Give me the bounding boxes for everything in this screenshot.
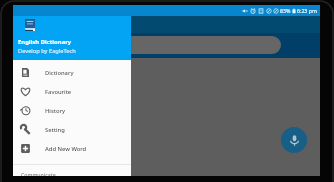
staticText: Develop by EagleTech [18,47,76,55]
staticText: Dictionary [45,69,74,77]
button[interactable]: Setting [13,120,131,139]
button[interactable]: Add New Word [13,139,131,158]
staticText: 83% [280,7,291,14]
button[interactable]: Dictionary [13,63,131,82]
staticText: Communicate [21,171,56,176]
staticText: Add New Word [45,145,87,153]
staticText: Setting [45,126,65,134]
button[interactable]: Voice search [281,127,307,153]
staticText: History [45,107,65,115]
button[interactable]: Favourite [13,82,131,101]
staticText: Favourite [45,88,72,96]
staticText: 6:23 pm [297,7,317,14]
button[interactable]: Search [118,36,281,54]
button[interactable]: History [13,101,131,120]
staticText: English Dictionary [18,38,72,46]
